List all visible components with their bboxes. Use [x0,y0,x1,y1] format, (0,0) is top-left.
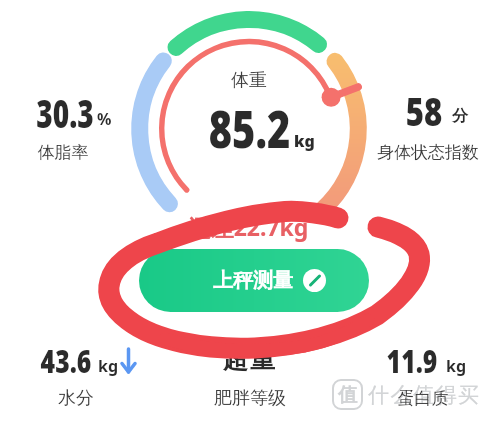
staticText: 体脂率 [0,142,213,163]
staticText: kg [98,355,119,377]
staticText: % [97,108,112,130]
staticText: kg [446,355,467,377]
staticText: 水分 [0,387,226,410]
staticText: 85.2 [209,93,290,162]
staticText: 肥胖等级 [100,387,400,410]
staticText: 蛋白质 [273,388,500,409]
staticText: 上秤测量 [213,268,293,293]
staticText: 身体状态指数 [278,142,500,163]
staticText: 什么值得买 [368,382,481,408]
staticText: kg [294,130,315,152]
staticText: 11.9 [386,340,438,382]
staticText: 超重 [100,344,400,375]
staticText: 43.6 [40,340,92,382]
staticText: 值 [338,383,357,407]
staticText: 30.3 [36,86,94,139]
staticText: 还差22.7kg [98,211,398,242]
staticText: 58 [406,84,442,137]
staticText: 分 [452,106,468,126]
button[interactable]: 上秤测量 [139,249,369,312]
staticText: 体重 [99,69,399,92]
